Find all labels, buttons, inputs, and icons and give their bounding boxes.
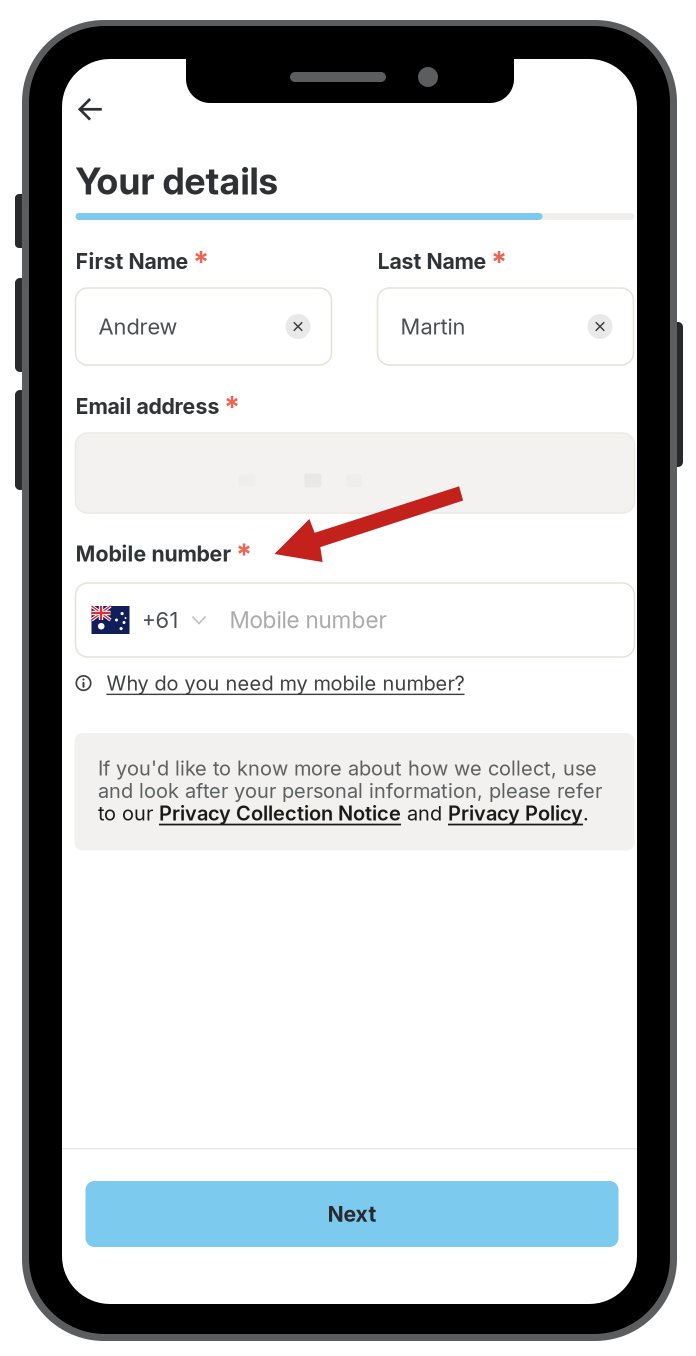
staticText: to our Privacy Collection Notice and Pri… [98,801,589,825]
button[interactable]: Next [85,1181,618,1247]
button[interactable]: +61 [75,583,634,657]
staticText: Next [327,1201,376,1227]
staticText: Why do you need my mobile number? [106,671,464,695]
button[interactable]: Back [67,85,115,133]
button[interactable]: Clear . [285,314,310,339]
staticText: Mobile number [229,606,386,634]
staticText: * [224,389,240,425]
staticText: and look after your personal information… [98,779,602,803]
staticText: If you'd like to know more about how we … [98,756,597,780]
staticText: Andrew [98,313,177,340]
staticText: +61 [141,607,178,633]
staticText: Martin [400,313,465,340]
staticText: * [236,537,252,572]
staticText: * [491,244,507,280]
button[interactable]: Andrew [75,288,331,365]
staticText: Your details [75,159,277,203]
staticText: First Name [75,248,188,274]
button[interactable]: Why do you need my mobile number? [75,671,464,695]
button[interactable]: Martin [377,288,633,365]
staticText: * [193,244,209,280]
staticText: Last Name [377,248,486,274]
staticText: Email address [75,393,219,419]
button[interactable]: Clear . [587,314,612,339]
staticText: Mobile number [75,541,231,567]
